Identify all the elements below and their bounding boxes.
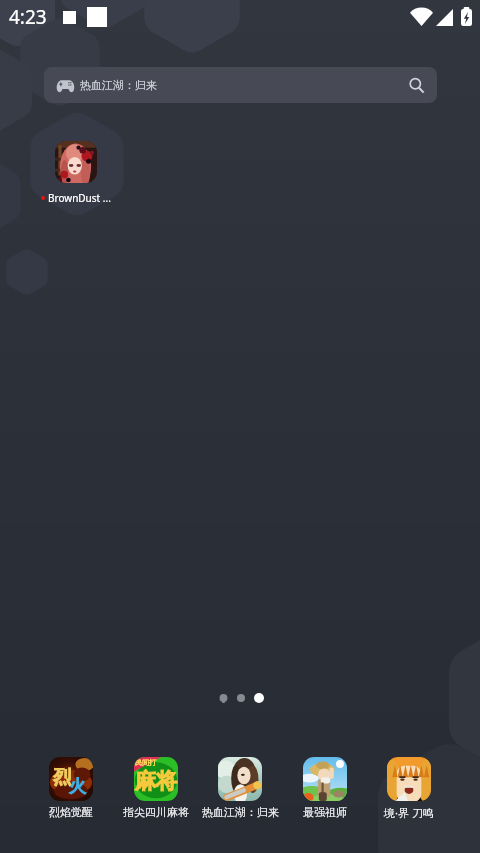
staticText: BrownDust ... — [48, 191, 111, 205]
button[interactable]: 民间打 — [114, 757, 198, 819]
staticText: 热血江湖：归来 — [80, 78, 157, 92]
button[interactable]: BrownDust ... — [36, 141, 116, 205]
staticText: 4:23 — [9, 4, 47, 30]
staticText: 烈 — [53, 766, 71, 789]
button[interactable]: 烈 — [29, 757, 113, 819]
button[interactable]: 热血江湖：归来 — [44, 67, 437, 103]
button[interactable]: 最强祖师 — [283, 757, 367, 819]
button[interactable]: Page 2 — [237, 694, 245, 702]
staticText: 热血江湖：归来 — [202, 805, 279, 819]
staticText: 境·界 刀鸣 — [384, 805, 434, 820]
other: Search — [408, 77, 425, 94]
staticText: 民间打 — [135, 758, 156, 767]
staticText: 火 — [69, 776, 86, 797]
button[interactable]: 热血江湖：归来 — [198, 757, 282, 819]
staticText: 最强祖师 — [303, 805, 347, 819]
staticText: 烈焰觉醒 — [49, 805, 93, 819]
button[interactable]: Page 3 — [254, 693, 264, 703]
staticText: 指尖四川麻将 — [123, 805, 189, 819]
button[interactable]: Home page — [219, 694, 228, 703]
staticText: 麻将 — [135, 768, 177, 794]
button[interactable]: 境·界 刀鸣 — [367, 757, 451, 820]
